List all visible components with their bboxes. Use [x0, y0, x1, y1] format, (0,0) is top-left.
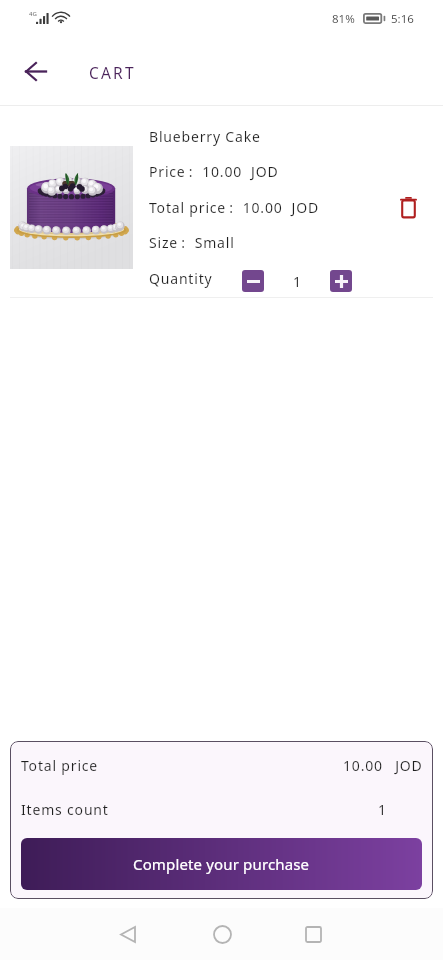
staticText: 5:16 — [391, 11, 414, 27]
button[interactable]: Complete your purchase — [21, 838, 422, 890]
button[interactable]: Back — [11, 47, 59, 95]
staticText: Quantity — [149, 269, 213, 288]
staticText: Price : 10.00 JOD — [149, 162, 279, 181]
button[interactable]: Home — [194, 908, 250, 960]
staticText: 1 — [293, 272, 302, 291]
staticText: 4G — [29, 10, 37, 18]
button[interactable]: Delete item — [390, 189, 426, 225]
staticText: Size : Small — [149, 233, 235, 252]
staticText: 81% — [332, 11, 355, 27]
staticText: Total price : 10.00 JOD — [149, 198, 319, 217]
button[interactable]: Back — [100, 908, 156, 960]
button[interactable]: Increase quantity — [330, 270, 352, 292]
staticText: 10.00 JOD — [343, 756, 423, 775]
staticText: Complete your purchase — [133, 854, 310, 874]
staticText: Items count — [21, 800, 109, 819]
staticText: Total price — [21, 756, 99, 775]
staticText: 1 — [378, 800, 387, 819]
button[interactable]: Recent apps — [285, 908, 341, 960]
staticText: CART — [89, 62, 136, 83]
button[interactable]: Decrease quantity — [242, 270, 264, 292]
staticText: Blueberry Cake — [149, 127, 261, 146]
